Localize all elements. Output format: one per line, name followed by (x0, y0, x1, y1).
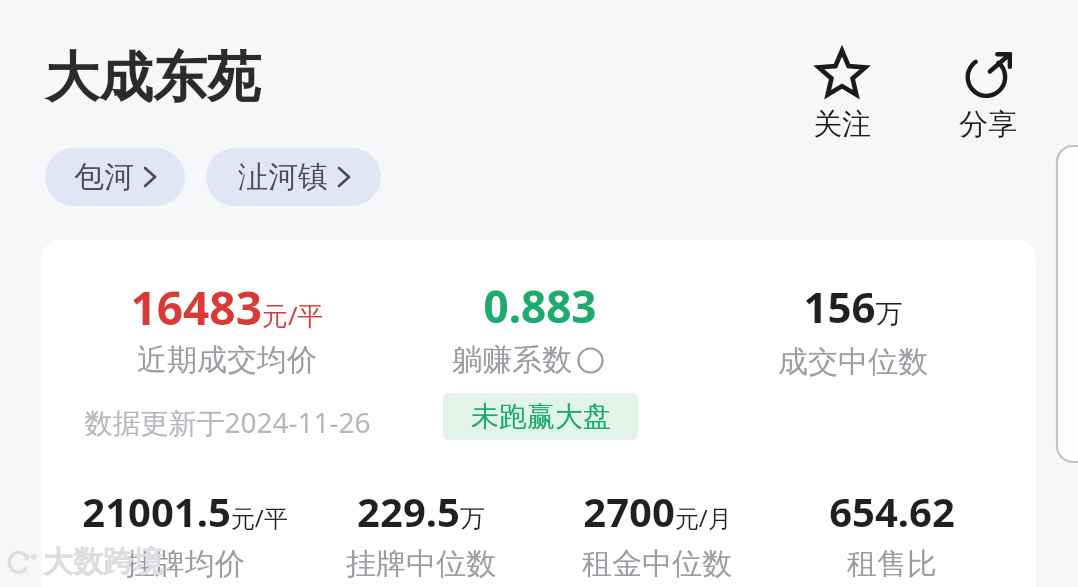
staticText: 大成东苑 (45, 44, 261, 112)
staticText: 挂牌中位数 (346, 545, 496, 583)
staticText: 0.883 (483, 276, 597, 336)
button[interactable]: 沚河镇 (206, 148, 381, 206)
staticText: 未跑赢大盘 (471, 399, 611, 434)
button[interactable]: 躺赚系数 (452, 341, 604, 379)
staticText: 21001.5元/平 (82, 484, 288, 538)
staticText: 大数跨境 (43, 543, 163, 581)
staticText: 租售比 (847, 545, 937, 583)
staticText: 关注 (813, 106, 871, 143)
staticText: 躺赚系数 (452, 341, 572, 379)
staticText: 成交中位数 (778, 343, 928, 381)
button[interactable]: 未跑赢大盘 (443, 393, 638, 440)
staticText: 沚河镇 (238, 158, 328, 196)
staticText: 16483元/平 (130, 276, 324, 339)
staticText: 分享 (959, 106, 1017, 143)
staticText: 租金中位数 (582, 545, 732, 583)
staticText: 包河 (74, 158, 134, 196)
staticText: 数据更新于2024-11-26 (84, 403, 371, 441)
staticText: 近期成交均价 (137, 341, 317, 379)
staticText: 2700元/月 (583, 484, 732, 538)
staticText: 挂牌均价 (125, 545, 245, 583)
button[interactable]: 包河 (45, 148, 185, 206)
staticText: 156万 (803, 278, 903, 335)
button[interactable]: 分享 (936, 48, 1040, 143)
button[interactable]: 关注 (790, 48, 894, 143)
staticText: 654.62 (829, 484, 955, 538)
staticText: 229.5万 (357, 484, 485, 538)
